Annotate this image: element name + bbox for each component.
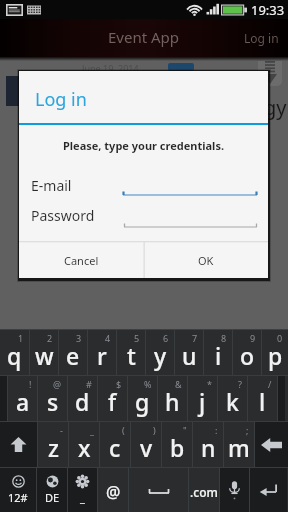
- staticText: Password: [31, 206, 95, 225]
- staticText: y: [154, 340, 167, 371]
- button[interactable]: d: [68, 376, 97, 421]
- staticText: t: [127, 340, 136, 371]
- button[interactable]: Log in: [235, 19, 288, 57]
- staticText: z: [48, 432, 59, 463]
- button[interactable]: Cancel: [19, 242, 143, 278]
- staticText: h: [165, 386, 180, 417]
- staticText: $: [116, 378, 122, 390]
- staticText: l: [259, 386, 266, 417]
- staticText: 4: [105, 332, 111, 344]
- staticText: ?: [238, 378, 242, 390]
- button[interactable]: Voice input: [220, 468, 249, 512]
- staticText: 5: [134, 332, 140, 344]
- staticText: @: [53, 378, 62, 390]
- staticText: b: [170, 432, 185, 463]
- staticText: &: [175, 378, 182, 390]
- staticText: 9: [250, 332, 256, 344]
- button[interactable]: b: [162, 422, 192, 467]
- button[interactable]: y: [146, 330, 174, 375]
- staticText: (: [122, 424, 125, 436]
- button[interactable]: Space: [129, 468, 188, 512]
- staticText: _: [90, 424, 94, 436]
- button[interactable]: @: [98, 468, 128, 512]
- button[interactable]: p: [262, 330, 288, 375]
- staticText: _: [80, 490, 85, 505]
- button[interactable]: Enter: [250, 468, 287, 512]
- staticText: /: [268, 378, 272, 390]
- button[interactable]: e: [59, 330, 87, 375]
- staticText: j: [199, 386, 206, 417]
- button[interactable]: h: [158, 376, 187, 421]
- staticText: gy: [264, 94, 287, 121]
- staticText: Log in: [35, 87, 87, 112]
- staticText: x: [78, 432, 91, 463]
- button[interactable]: Shift: [0, 422, 37, 467]
- button[interactable]: c: [100, 422, 130, 467]
- button[interactable]: z: [38, 422, 68, 467]
- staticText: June 19, 2014: [82, 62, 139, 74]
- staticText: :: [215, 424, 218, 436]
- staticText: Please, type your credentials.: [19, 138, 268, 153]
- staticText: a: [16, 386, 30, 417]
- button[interactable]: Backspace: [255, 422, 288, 467]
- staticText: OK: [198, 253, 214, 268]
- button[interactable]: x: [69, 422, 99, 467]
- staticText: 8: [221, 332, 227, 344]
- staticText: g: [135, 386, 150, 417]
- button[interactable]: j: [188, 376, 217, 421]
- staticText: d: [75, 386, 90, 417]
- staticText: ): [153, 424, 156, 436]
- button[interactable]: i: [204, 330, 232, 375]
- staticText: k: [226, 386, 239, 417]
- button[interactable]: m: [224, 422, 254, 467]
- button[interactable]: q: [0, 330, 29, 375]
- button[interactable]: n: [193, 422, 223, 467]
- staticText: r: [97, 340, 107, 371]
- staticText: ": [183, 424, 187, 436]
- staticText: -: [60, 424, 63, 436]
- button[interactable]: t: [117, 330, 145, 375]
- staticText: u: [182, 340, 197, 371]
- staticText: 1: [18, 332, 24, 344]
- button[interactable]: a: [8, 376, 37, 421]
- button[interactable]: w: [30, 330, 58, 375]
- staticText: i: [215, 340, 222, 371]
- staticText: *: [207, 378, 212, 390]
- button[interactable]: OK: [143, 242, 268, 278]
- staticText: c: [109, 432, 121, 463]
- button[interactable]: r: [88, 330, 116, 375]
- staticText: 2: [47, 332, 53, 344]
- button[interactable]: k: [218, 376, 247, 421]
- staticText: 6: [163, 332, 169, 344]
- staticText: 0: [277, 332, 283, 344]
- staticText: 12#: [8, 490, 28, 505]
- button[interactable]: .com: [189, 468, 219, 512]
- button[interactable]: DE: [37, 468, 67, 512]
- button[interactable]: v: [131, 422, 161, 467]
- staticText: Log in: [244, 30, 279, 46]
- staticText: 7: [192, 332, 198, 344]
- staticText: Event App: [108, 27, 180, 47]
- staticText: @: [106, 481, 121, 503]
- staticText: s: [47, 386, 59, 417]
- staticText: .com: [190, 484, 218, 500]
- staticText: v: [140, 432, 153, 463]
- button[interactable]: l: [248, 376, 277, 421]
- button[interactable]: f: [98, 376, 127, 421]
- staticText: 19:33: [251, 1, 285, 19]
- button[interactable]: u: [175, 330, 203, 375]
- button[interactable]: Settings: [68, 468, 97, 512]
- staticText: o: [240, 340, 255, 371]
- staticText: e: [66, 340, 80, 371]
- button[interactable]: s: [38, 376, 67, 421]
- staticText: ;: [246, 424, 249, 436]
- staticText: 3: [76, 332, 82, 344]
- staticText: f: [108, 386, 117, 417]
- staticText: !: [29, 378, 32, 390]
- staticText: E-mail: [31, 176, 72, 195]
- button[interactable]: Emoji 12#: [0, 468, 36, 512]
- button[interactable]: g: [128, 376, 157, 421]
- button[interactable]: o: [233, 330, 261, 375]
